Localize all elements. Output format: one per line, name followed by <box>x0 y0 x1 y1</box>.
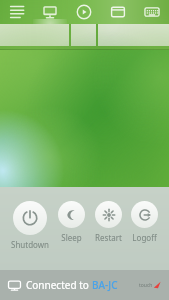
button[interactable]: Display <box>33 0 67 24</box>
button[interactable]: Logoff <box>130 201 159 243</box>
button[interactable]: Sleep <box>57 201 86 243</box>
staticText: Restart <box>95 232 122 243</box>
button[interactable] <box>98 24 169 46</box>
staticText: touch <box>139 282 153 289</box>
button[interactable]: Menu <box>0 0 33 24</box>
staticText: Sleep <box>61 232 82 243</box>
staticText: Connected to <box>26 278 92 292</box>
button[interactable]: Connected to <box>0 270 169 300</box>
button[interactable] <box>71 24 96 46</box>
staticText: BA-JC <box>92 278 118 292</box>
button[interactable]: Windows <box>101 0 135 24</box>
button[interactable]: Restart <box>94 201 123 243</box>
button[interactable]: Keyboard <box>135 0 169 24</box>
staticText: Logoff <box>132 232 157 243</box>
staticText: Shutdown <box>11 239 49 250</box>
button[interactable]: Shutdown <box>10 201 50 250</box>
button[interactable]: Play <box>67 0 101 24</box>
button[interactable] <box>0 24 69 46</box>
